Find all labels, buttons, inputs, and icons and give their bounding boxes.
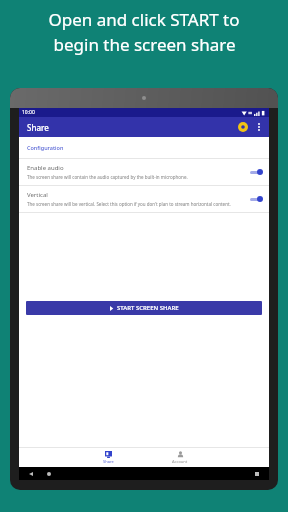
staticText: Enable audio bbox=[27, 164, 64, 172]
staticText: Vertical bbox=[27, 191, 48, 199]
button[interactable]: Share bbox=[88, 449, 128, 466]
button[interactable]: Enable audio toggle bbox=[249, 168, 263, 176]
staticText: Account bbox=[172, 459, 188, 464]
button[interactable]: Record bbox=[237, 121, 249, 133]
button[interactable]: Recents bbox=[252, 469, 262, 479]
button[interactable]: Account bbox=[160, 449, 200, 466]
button[interactable]: More options bbox=[254, 119, 264, 135]
staticText: START SCREEN SHARE bbox=[117, 304, 179, 312]
staticText: Share bbox=[103, 459, 114, 464]
button[interactable]: Enable audio bbox=[19, 159, 269, 185]
button[interactable]: Vertical toggle bbox=[249, 195, 263, 203]
staticText: begin the screen share bbox=[53, 33, 236, 56]
staticText: Open and click START to bbox=[48, 8, 240, 31]
staticText: The screen share will contain the audio … bbox=[27, 174, 188, 180]
staticText: The screen share will be vertical. Selec… bbox=[27, 201, 231, 207]
staticText: Share bbox=[27, 122, 49, 133]
button[interactable]: START SCREEN SHARE bbox=[26, 301, 262, 315]
button[interactable]: Back bbox=[26, 469, 36, 479]
staticText: Configuration bbox=[27, 144, 64, 151]
button[interactable]: Vertical bbox=[19, 186, 269, 212]
staticText: 10:00 bbox=[22, 109, 35, 116]
button[interactable]: Home bbox=[44, 469, 54, 479]
